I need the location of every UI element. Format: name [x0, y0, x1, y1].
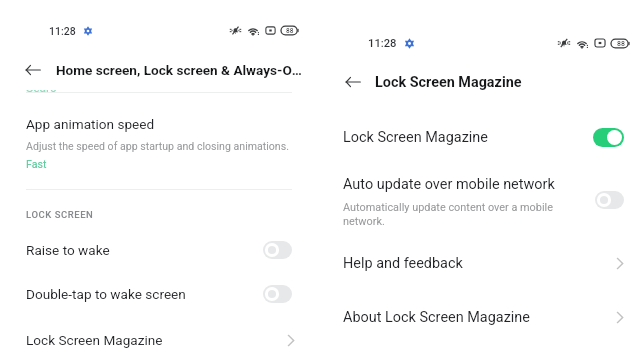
staticText: Fast [26, 158, 47, 170]
button[interactable]: Raise to wake [0, 234, 320, 266]
staticText: Lock Screen Magazine [343, 129, 488, 146]
staticText: Search [26, 90, 60, 93]
button[interactable]: Toggle, on [593, 128, 624, 147]
button[interactable]: About Lock Screen Magazine [320, 301, 640, 333]
staticText: Lock Screen Magazine [26, 332, 163, 348]
button[interactable]: Help and feedback [320, 247, 640, 279]
button[interactable]: Toggle, off [595, 191, 624, 209]
button[interactable]: Back [23, 60, 43, 80]
staticText: Automatically update content over a mobi… [343, 201, 567, 228]
button[interactable]: Toggle, off [263, 241, 292, 259]
staticText: LOCK SCREEN [26, 209, 94, 220]
staticText: About Lock Screen Magazine [343, 309, 530, 326]
button[interactable]: Auto update over mobile network [320, 173, 640, 233]
staticText: Lock Screen Magazine [375, 74, 522, 91]
staticText: Help and feedback [343, 255, 463, 272]
staticText: App animation speed [26, 116, 155, 132]
staticText: Adjust the speed of app startup and clos… [26, 140, 289, 152]
staticText: Auto update over mobile network [343, 176, 555, 193]
button[interactable]: Lock Screen Magazine [320, 121, 640, 153]
button[interactable]: Toggle, off [263, 285, 292, 303]
staticText: Double-tap to wake screen [26, 286, 186, 302]
staticText: Home screen, Lock screen & Always-On Dis… [56, 62, 304, 78]
staticText: Raise to wake [26, 242, 110, 258]
button[interactable]: Back [343, 72, 363, 92]
staticText: 88 [286, 27, 294, 35]
staticText: 88 [617, 40, 625, 48]
staticText: 11:28 [49, 25, 76, 37]
staticText: 11:28 [368, 37, 397, 50]
button[interactable]: App animation speed [0, 112, 320, 176]
button[interactable]: Lock Screen Magazine [0, 323, 320, 357]
button[interactable]: Double-tap to wake screen [0, 278, 320, 310]
